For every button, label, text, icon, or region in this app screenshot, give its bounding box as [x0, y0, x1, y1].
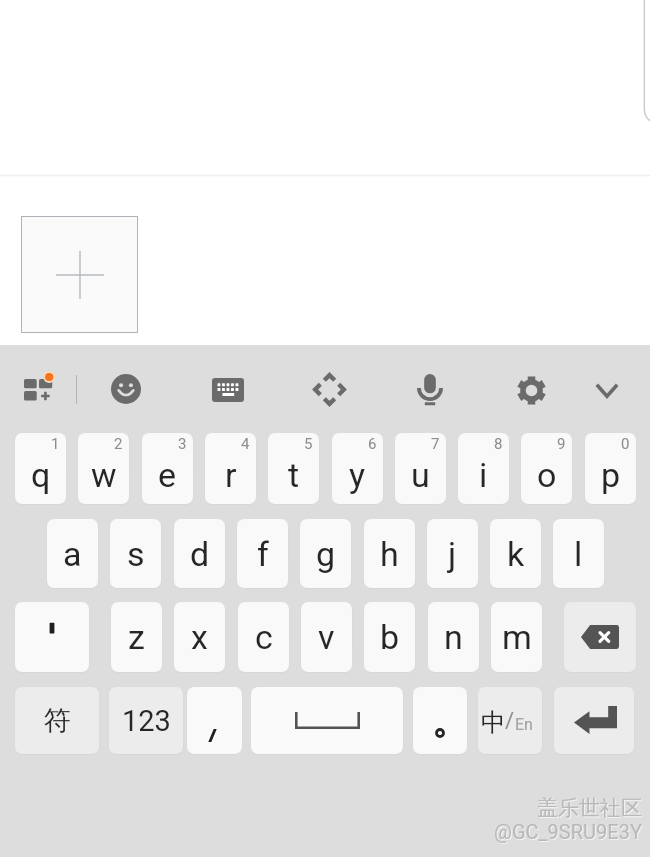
button[interactable]: n [428, 602, 479, 672]
staticText: 中 [481, 707, 506, 738]
button[interactable]: Add image [21, 216, 138, 333]
button[interactable] [413, 687, 467, 754]
button[interactable]: h [364, 519, 415, 588]
button[interactable]: 符 [15, 687, 99, 754]
staticText: z [128, 617, 145, 657]
staticText: 6 [368, 435, 377, 453]
button[interactable]: Emoji [100, 363, 152, 415]
button[interactable]: l [553, 519, 604, 588]
staticText: 符 [44, 704, 71, 738]
button[interactable]: v [301, 602, 352, 672]
button[interactable]: t [268, 433, 319, 504]
staticText: v [318, 617, 335, 657]
staticText: 8 [494, 435, 503, 453]
button[interactable]: e [142, 433, 193, 504]
staticText: 9 [557, 435, 566, 453]
button[interactable]: Keyboard [202, 364, 254, 416]
staticText: e [158, 455, 177, 495]
staticText: @GC_9SRU9E3Y [494, 820, 642, 843]
button[interactable]: y [332, 433, 383, 504]
button[interactable]: 123 [109, 687, 183, 754]
staticText: 盖乐世社区 [538, 796, 643, 822]
staticText: 1 [51, 435, 60, 453]
staticText: c [255, 617, 273, 657]
button[interactable] [15, 602, 89, 672]
staticText: d [190, 534, 210, 574]
staticText: 0 [621, 435, 630, 453]
button[interactable]: m [491, 602, 542, 672]
button[interactable]: Move keyboard [303, 363, 355, 415]
button[interactable]: k [490, 519, 541, 588]
button[interactable]: Space [251, 687, 403, 754]
staticText: x [191, 617, 208, 657]
staticText: 4 [241, 435, 250, 453]
staticText: 123 [122, 704, 171, 738]
staticText: o [537, 455, 557, 495]
button[interactable]: i [458, 433, 509, 504]
staticText: j [448, 534, 457, 574]
staticText: u [411, 455, 430, 495]
button[interactable]: j [427, 519, 478, 588]
staticText: @GC_9SRU9E3Y [495, 821, 643, 844]
button[interactable]: s [110, 519, 161, 588]
staticText: / [505, 708, 515, 734]
button[interactable]: d [174, 519, 225, 588]
button[interactable]: Enter [554, 687, 634, 754]
button[interactable]: r [205, 433, 256, 504]
staticText: w [91, 455, 117, 495]
staticText: r [225, 455, 237, 495]
button[interactable]: f [237, 519, 288, 588]
button[interactable]: x [174, 602, 225, 672]
button[interactable]: p [585, 433, 636, 504]
button[interactable]: o [521, 433, 572, 504]
staticText: s [127, 534, 145, 574]
button[interactable]: Voice input [404, 364, 456, 416]
staticText: k [507, 534, 525, 574]
staticText: i [479, 455, 488, 495]
staticText: m [502, 617, 532, 657]
button[interactable]: a [47, 519, 98, 588]
button[interactable]: c [238, 602, 289, 672]
button[interactable]: Stickers [12, 364, 64, 416]
button[interactable]: b [364, 602, 415, 672]
staticText: 7 [431, 435, 440, 453]
staticText: n [444, 617, 463, 657]
button[interactable]: z [111, 602, 162, 672]
staticText: 3 [178, 435, 187, 453]
button[interactable]: Settings [505, 364, 557, 416]
staticText: l [574, 534, 583, 574]
staticText: 5 [304, 435, 313, 453]
staticText: t [288, 455, 300, 495]
staticText: 2 [114, 435, 123, 453]
staticText: En [515, 715, 533, 734]
staticText: y [349, 455, 366, 495]
staticText: b [380, 617, 400, 657]
button[interactable]: q [15, 433, 66, 504]
button[interactable] [187, 687, 242, 754]
button[interactable]: Backspace [564, 602, 636, 672]
staticText: g [316, 534, 336, 574]
staticText: h [380, 534, 399, 574]
staticText: q [31, 455, 51, 495]
staticText: f [257, 534, 269, 574]
button[interactable]: u [395, 433, 446, 504]
staticText: a [63, 534, 82, 574]
button[interactable]: Chinese / English [478, 687, 542, 754]
button[interactable]: w [78, 433, 129, 504]
staticText: 盖乐世社区 [537, 795, 642, 821]
button[interactable]: Hide keyboard [581, 364, 633, 416]
button[interactable]: g [300, 519, 351, 588]
staticText: p [601, 455, 621, 495]
